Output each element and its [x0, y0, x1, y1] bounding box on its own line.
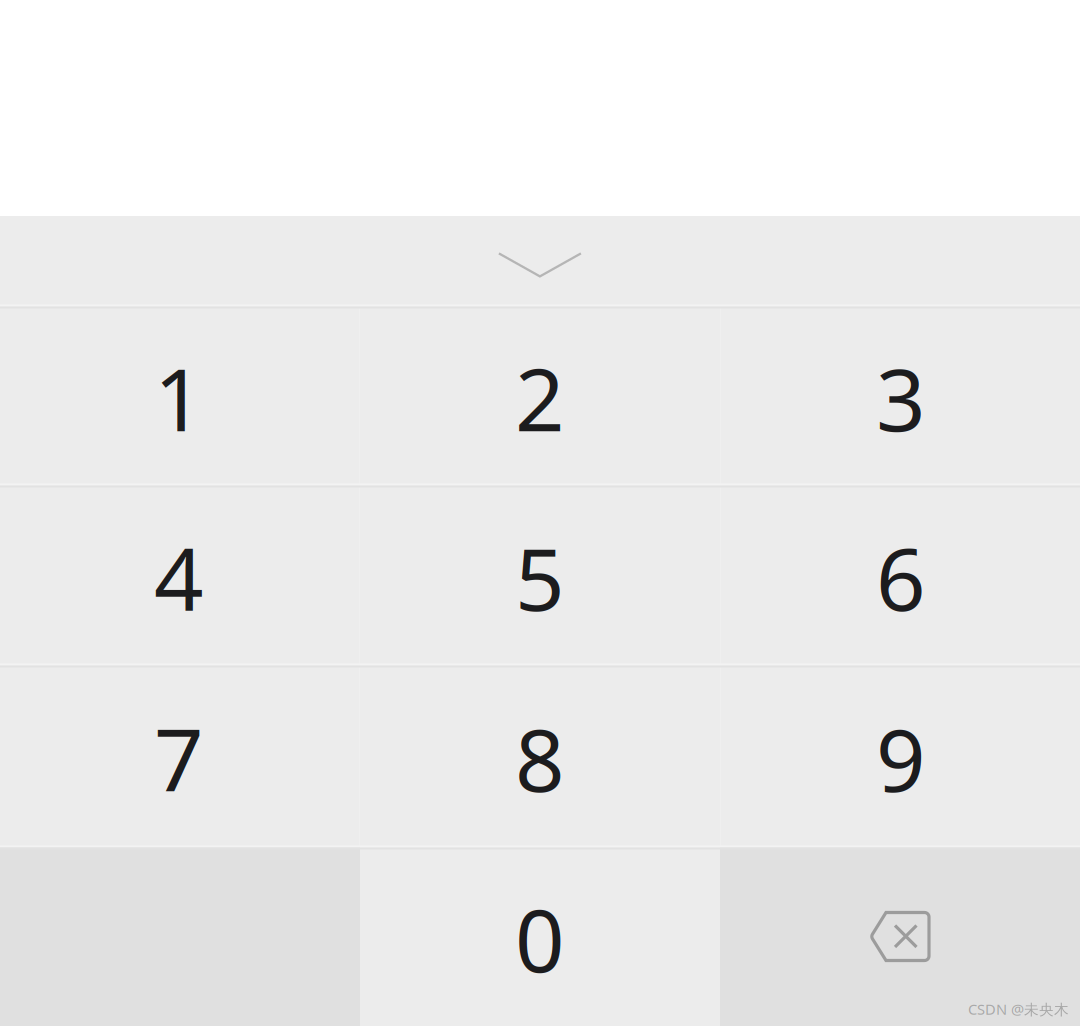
staticText: 2 — [515, 340, 565, 455]
staticText: 7 — [154, 700, 204, 816]
button[interactable]: 6 — [721, 485, 1080, 665]
button[interactable]: 8 — [360, 665, 720, 847]
staticText: 8 — [515, 700, 565, 816]
button[interactable]: 7 — [0, 665, 359, 847]
button[interactable]: 1 — [0, 306, 359, 485]
staticText: 1 — [154, 340, 204, 455]
button[interactable]: 4 — [0, 485, 359, 665]
staticText: 9 — [876, 700, 926, 816]
staticText: 6 — [876, 519, 926, 635]
staticText: 4 — [154, 519, 204, 635]
button[interactable]: Delete — [720, 847, 1080, 1026]
staticText: CSDN @未央木 — [968, 999, 1069, 1019]
button[interactable]: 0 — [360, 847, 720, 1026]
button[interactable]: 9 — [721, 665, 1080, 847]
staticText: 5 — [515, 519, 565, 635]
staticText: 0 — [515, 881, 565, 996]
staticText: 3 — [876, 340, 926, 455]
button[interactable]: 2 — [360, 306, 720, 485]
button[interactable]: 3 — [721, 306, 1080, 485]
button[interactable]: 5 — [360, 485, 720, 665]
